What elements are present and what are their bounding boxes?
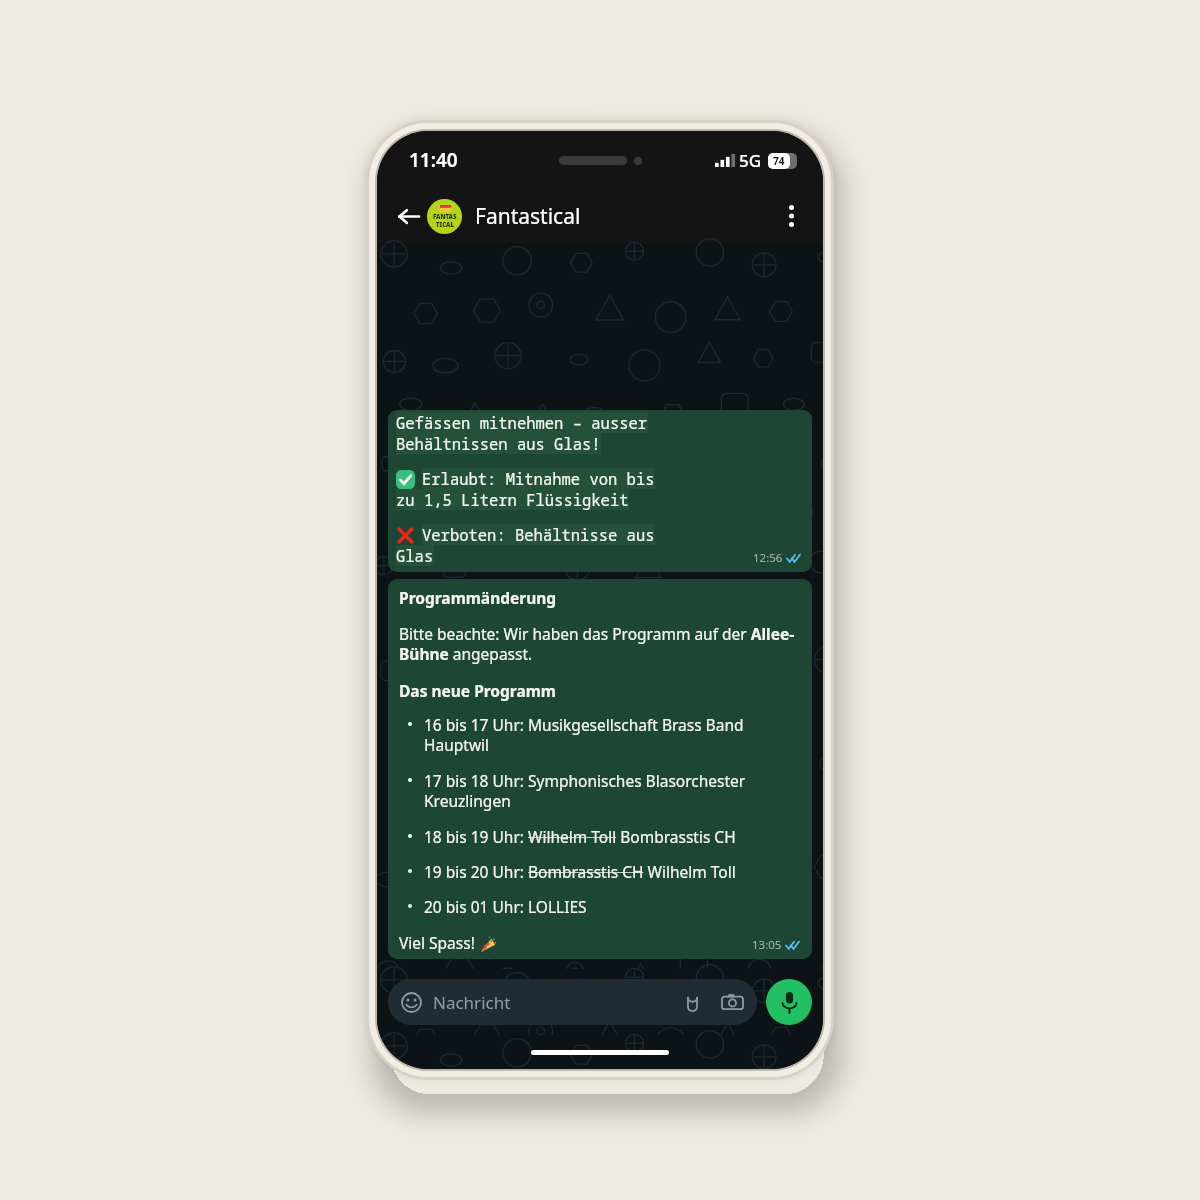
button[interactable]: More options [775,200,807,232]
staticText: Viel Spass! [399,932,479,953]
staticText: zu 1,5 Litern Flüssigkeit [396,489,629,510]
staticText: FANTAS [433,213,457,221]
staticText: Behältnissen aus Glas! [396,433,601,454]
staticText: Programmänderung [399,587,557,608]
staticText: TICAL [436,221,454,229]
button[interactable]: Voice message [766,979,812,1025]
staticText: 74 [773,154,785,168]
staticText: 18 bis 19 Uhr: Wilhelm Toll Bombrasstis … [424,826,736,847]
staticText: Glas [396,545,434,566]
button[interactable]: Fantastical avatar [427,199,462,234]
button[interactable]: Attach [680,990,704,1014]
staticText: 12:56 [753,550,783,566]
staticText: 5G [739,149,762,172]
staticText: Das neue Programm [399,680,556,701]
button[interactable]: Programmänderung [388,579,812,959]
staticText: 11:40 [409,147,458,173]
staticText: Bitte beachte: Wir haben das Programm au… [399,623,802,665]
staticText: Verboten: Behältnisse aus [422,524,655,545]
staticText: Nachricht [433,991,680,1014]
button[interactable]: Nachricht [388,979,757,1025]
staticText: Fantastical [475,202,775,231]
staticText: Erlaubt: Mitnahme von bis [422,468,655,489]
staticText: 16 bis 17 Uhr: Musikgesellschaft Brass B… [424,714,802,756]
staticText: 19 bis 20 Uhr: Bombrasstis CH Wilhelm To… [424,861,736,882]
staticText: 17 bis 18 Uhr: Symphonisches Blasorchest… [424,770,802,812]
button[interactable]: Camera [720,990,744,1014]
button[interactable]: Gefässen mitnehmen – ausser [388,410,812,572]
button[interactable]: Back [393,201,423,231]
staticText: 13:05 [752,937,782,953]
staticText: Gefässen mitnehmen – ausser [396,412,648,433]
staticText: 20 bis 01 Uhr: LOLLIES [424,896,587,917]
